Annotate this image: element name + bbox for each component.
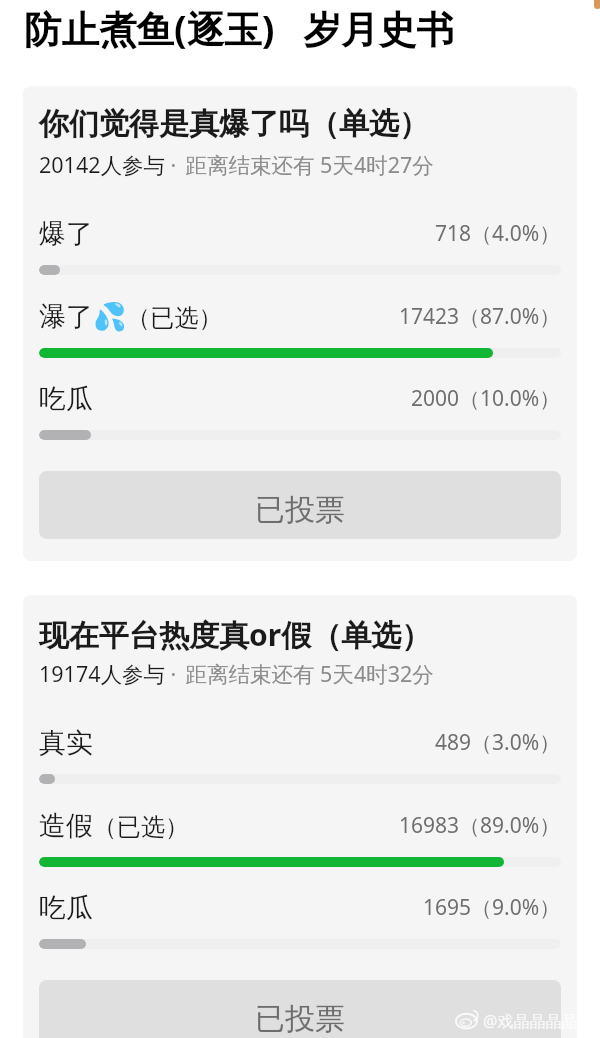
button[interactable]: 已投票 xyxy=(39,980,561,1038)
staticText: 17423（87.0%） xyxy=(399,302,561,331)
button[interactable]: 爆了 xyxy=(39,212,561,276)
staticText: 吃瓜 xyxy=(39,891,93,925)
staticText: 造假（已选） xyxy=(39,809,189,843)
button[interactable]: 吃瓜 xyxy=(39,886,561,950)
staticText: @戏晶晶晶晶晶 xyxy=(483,1010,594,1032)
staticText: 489（3.0%） xyxy=(435,728,561,757)
button[interactable]: 吃瓜 xyxy=(39,377,561,441)
staticText: 吃瓜 xyxy=(39,382,93,416)
staticText: 718（4.0%） xyxy=(435,219,561,248)
staticText: 真实 xyxy=(39,726,93,760)
staticText: 已投票 xyxy=(255,1000,345,1038)
staticText: 16983（89.0%） xyxy=(399,811,561,840)
staticText: 1695（9.0%） xyxy=(423,893,561,922)
staticText: 防止煮鱼(逐玉) 岁月史书 xyxy=(24,3,454,54)
staticText: 19174人参与 · 距离结束还有 5天4时32分 xyxy=(39,659,434,688)
staticText: 2000（10.0%） xyxy=(411,384,561,413)
staticText: 瀑了💦（已选） xyxy=(39,300,223,334)
staticText: 20142人参与 · 距离结束还有 5天4时27分 xyxy=(39,150,434,179)
button[interactable]: 瀑了💦（已选） xyxy=(39,295,561,359)
staticText: 现在平台热度真or假（单选） xyxy=(39,614,432,655)
staticText: 已投票 xyxy=(255,491,345,529)
button[interactable]: 造假（已选） xyxy=(39,804,561,868)
button[interactable]: 已投票 xyxy=(39,471,561,539)
staticText: 爆了 xyxy=(39,217,93,251)
button[interactable]: 真实 xyxy=(39,721,561,785)
staticText: 你们觉得是真爆了吗（单选） xyxy=(39,105,429,143)
button[interactable]: 防止煮鱼(逐玉) 岁月史书 xyxy=(24,3,454,54)
